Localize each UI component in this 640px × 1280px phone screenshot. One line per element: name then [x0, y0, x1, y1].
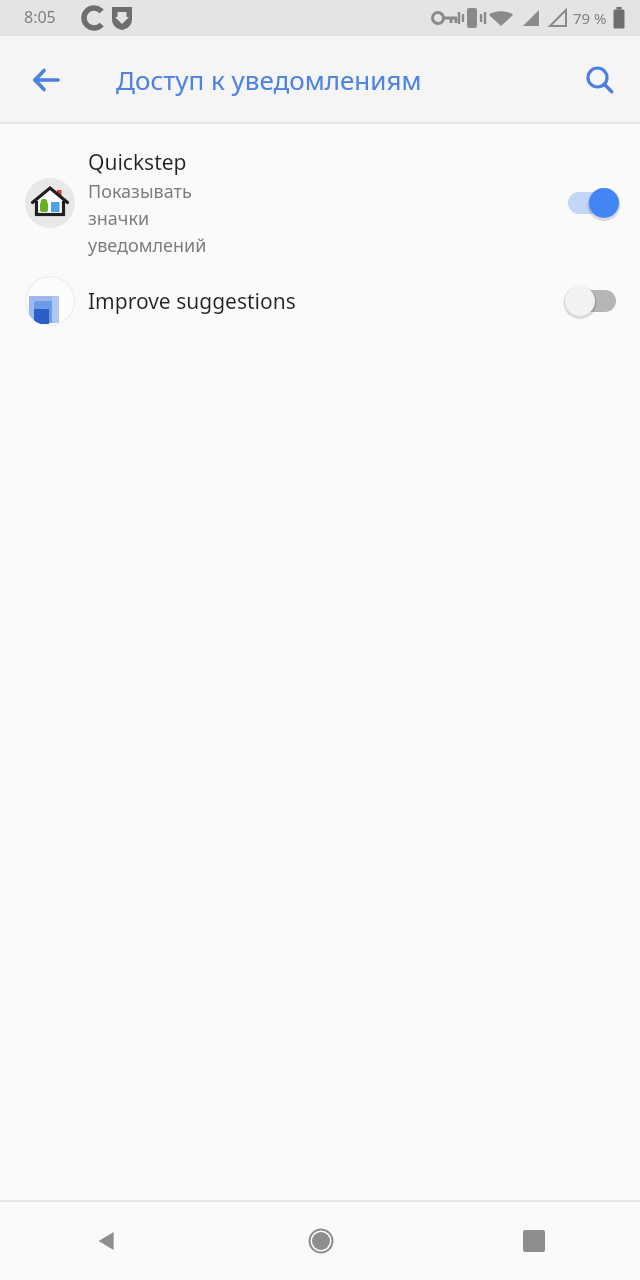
staticText: Improve suggestions: [88, 287, 296, 316]
button[interactable]: Back: [0, 1202, 214, 1280]
button[interactable]: Home: [214, 1202, 427, 1280]
staticText: Показывать значки уведомлений: [88, 179, 207, 257]
staticText: 79 %: [573, 8, 607, 28]
staticText: 8:05: [24, 6, 56, 28]
staticText: Quickstep: [88, 148, 187, 177]
button[interactable]: Quickstep: [0, 140, 640, 265]
button[interactable]: Improve suggestions: [0, 265, 640, 337]
button[interactable]: Recent apps: [427, 1202, 640, 1280]
button[interactable]: On: [544, 173, 640, 233]
button[interactable]: Back: [14, 48, 78, 112]
button[interactable]: Search: [568, 48, 632, 112]
button[interactable]: Off: [544, 271, 640, 331]
staticText: Доступ к уведомлениям: [116, 62, 422, 97]
